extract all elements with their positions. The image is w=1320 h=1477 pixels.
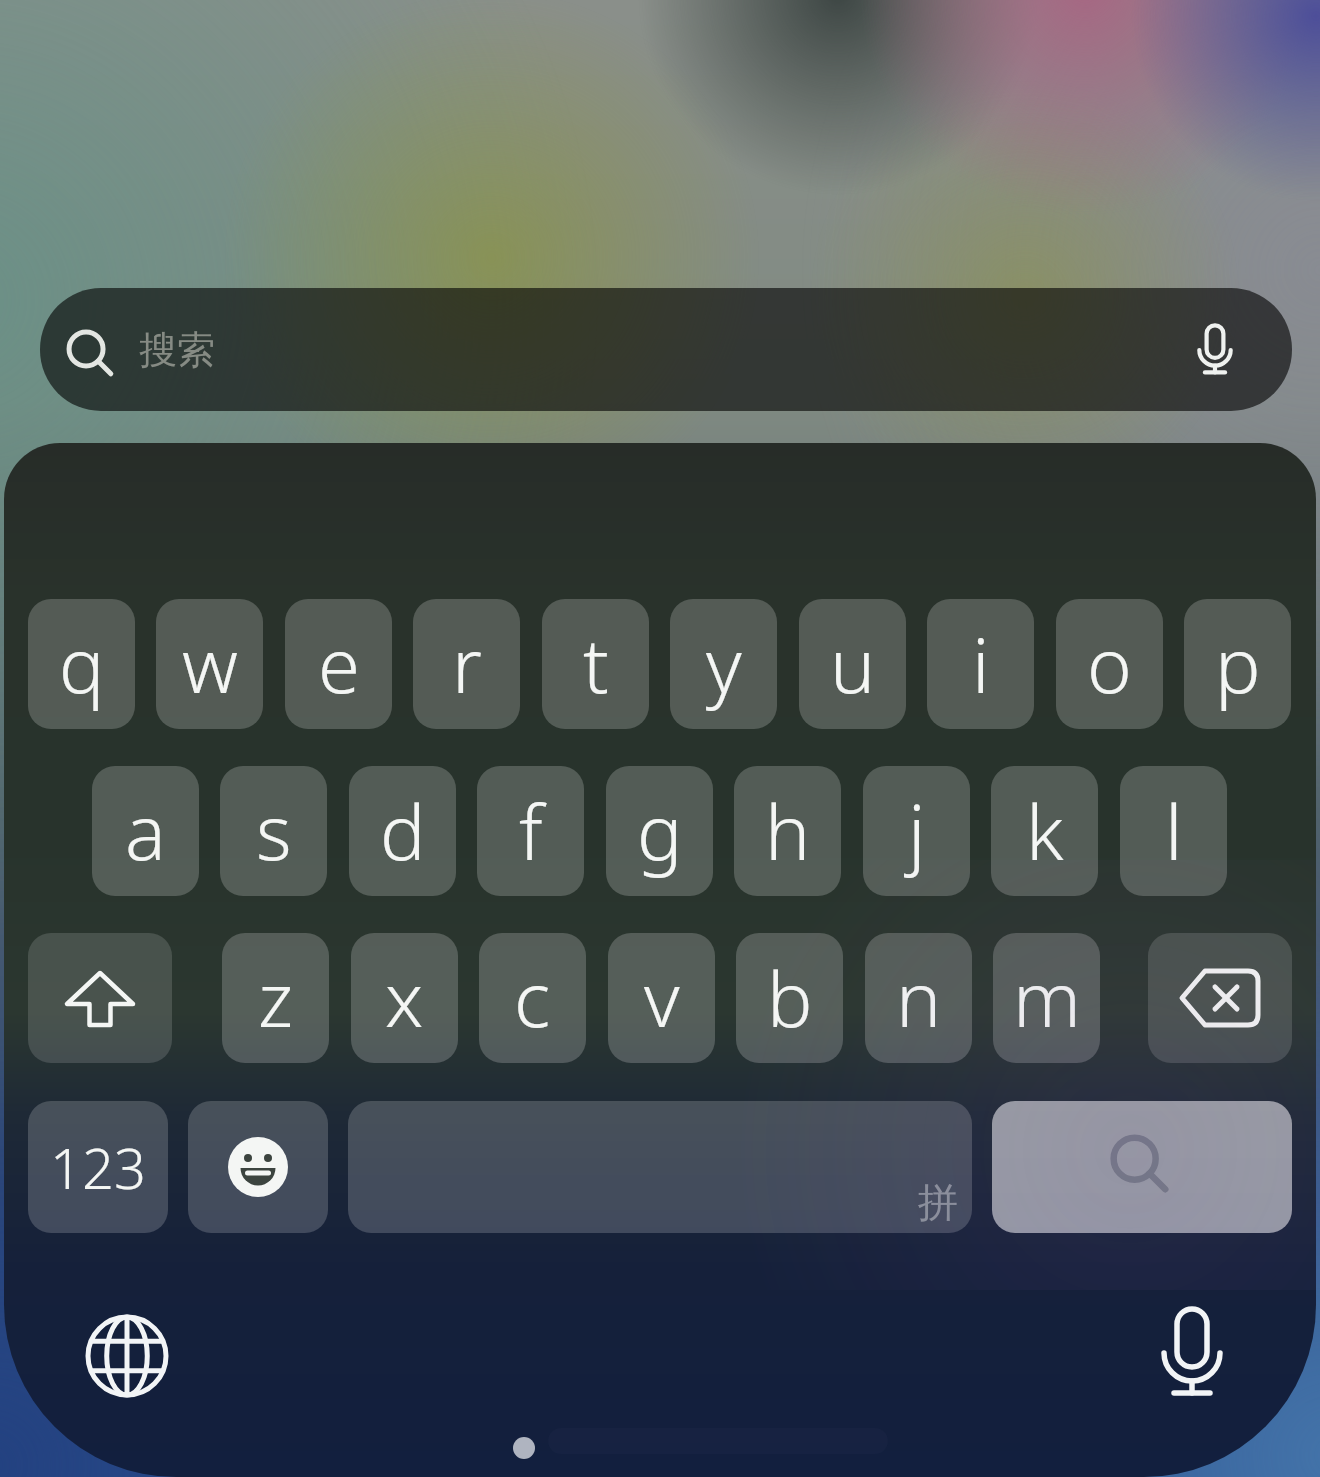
button[interactable]: e bbox=[285, 599, 392, 729]
staticText: 123 bbox=[50, 1129, 146, 1205]
button[interactable] bbox=[1127, 1288, 1257, 1418]
staticText: y bbox=[706, 612, 742, 716]
button[interactable]: 拼 bbox=[348, 1101, 972, 1233]
staticText: i bbox=[972, 612, 990, 716]
button[interactable]: g bbox=[606, 766, 713, 896]
button[interactable]: a bbox=[92, 766, 199, 896]
button[interactable]: t bbox=[542, 599, 649, 729]
button[interactable]: n bbox=[865, 933, 972, 1063]
staticText: w bbox=[182, 612, 238, 716]
staticText: z bbox=[258, 946, 294, 1050]
button[interactable]: y bbox=[670, 599, 777, 729]
staticText: k bbox=[1026, 779, 1064, 883]
button[interactable]: d bbox=[349, 766, 456, 896]
button[interactable] bbox=[992, 1101, 1292, 1233]
staticText: e bbox=[318, 612, 360, 716]
staticText: b bbox=[767, 946, 813, 1050]
staticText: j bbox=[908, 779, 926, 883]
button[interactable]: 123 bbox=[28, 1101, 168, 1233]
button[interactable]: f bbox=[477, 766, 584, 896]
button[interactable]: o bbox=[1056, 599, 1163, 729]
staticText: u bbox=[830, 612, 876, 716]
button[interactable]: 搜索 bbox=[40, 288, 1292, 411]
staticText: 搜索 bbox=[139, 326, 215, 374]
button[interactable]: j bbox=[863, 766, 970, 896]
staticText: n bbox=[896, 946, 942, 1050]
staticText: r bbox=[452, 612, 482, 716]
staticText: x bbox=[385, 946, 424, 1050]
button[interactable]: s bbox=[220, 766, 327, 896]
staticText: 拼 bbox=[918, 1177, 958, 1227]
staticText: g bbox=[637, 779, 683, 883]
button[interactable] bbox=[1148, 933, 1292, 1063]
button[interactable]: p bbox=[1184, 599, 1291, 729]
button[interactable]: v bbox=[608, 933, 715, 1063]
button[interactable]: u bbox=[799, 599, 906, 729]
staticText: c bbox=[514, 946, 551, 1050]
button[interactable]: k bbox=[991, 766, 1098, 896]
button[interactable]: z bbox=[222, 933, 329, 1063]
button[interactable] bbox=[188, 1101, 328, 1233]
staticText: t bbox=[583, 612, 609, 716]
staticText: s bbox=[256, 779, 292, 883]
button[interactable]: b bbox=[736, 933, 843, 1063]
button[interactable]: q bbox=[28, 599, 135, 729]
staticText: h bbox=[765, 779, 811, 883]
button[interactable]: w bbox=[156, 599, 263, 729]
staticText: d bbox=[380, 779, 426, 883]
button[interactable]: c bbox=[479, 933, 586, 1063]
staticText: o bbox=[1087, 612, 1132, 716]
staticText: v bbox=[644, 946, 680, 1050]
staticText: l bbox=[1165, 779, 1183, 883]
staticText: m bbox=[1013, 946, 1081, 1050]
button[interactable] bbox=[62, 1291, 192, 1421]
button[interactable]: r bbox=[413, 599, 520, 729]
button[interactable]: x bbox=[351, 933, 458, 1063]
button[interactable] bbox=[28, 933, 172, 1063]
staticText: f bbox=[519, 779, 543, 883]
button[interactable]: h bbox=[734, 766, 841, 896]
staticText: a bbox=[125, 779, 166, 883]
button[interactable]: l bbox=[1120, 766, 1227, 896]
staticText: q bbox=[59, 612, 105, 716]
button[interactable]: i bbox=[927, 599, 1034, 729]
staticText: p bbox=[1215, 612, 1261, 716]
button[interactable]: m bbox=[993, 933, 1100, 1063]
